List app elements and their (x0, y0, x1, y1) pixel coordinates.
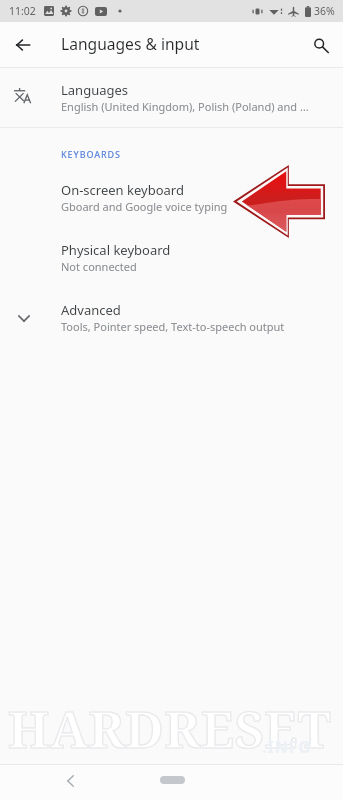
staticText: .INFO (262, 736, 313, 758)
button[interactable]: Physical keyboard (0, 236, 343, 280)
staticText: KEYBOARDS (61, 148, 121, 160)
button[interactable]: Languages (0, 68, 343, 127)
button[interactable]: Advanced (0, 296, 343, 340)
button[interactable]: Back (6, 28, 40, 62)
button[interactable]: Back (53, 764, 87, 798)
button[interactable]: Home (150, 767, 194, 793)
staticText: Advanced (61, 301, 121, 319)
staticText: Gboard and Google voice typing (61, 199, 228, 214)
staticText: Not connected (61, 259, 137, 274)
staticText: Tools, Pointer speed, Text-to-speech out… (61, 319, 285, 334)
staticText: English (United Kingdom), Polish (Poland… (61, 99, 309, 114)
button[interactable]: On-screen keyboard (0, 176, 343, 220)
button[interactable]: Search (304, 28, 338, 62)
staticText: Physical keyboard (61, 241, 171, 259)
staticText: Languages & input (61, 33, 200, 54)
staticText: Languages (61, 81, 129, 99)
staticText: 11:02 (9, 4, 36, 18)
staticText: HARDRESET (8, 694, 332, 763)
staticText: 36% (314, 4, 335, 18)
staticText: On-screen keyboard (61, 181, 184, 199)
staticText: HARDRESET (8, 694, 332, 763)
